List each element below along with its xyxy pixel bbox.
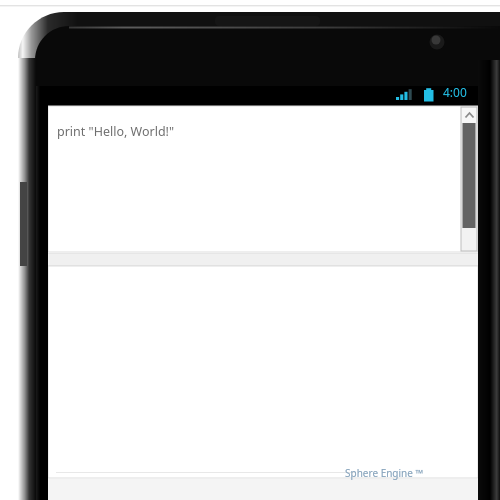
staticText: print "Hello, World!"	[57, 123, 175, 140]
button[interactable]: Scroll up	[462, 107, 477, 123]
button[interactable]: Sphere Engine ™	[345, 466, 475, 482]
staticText: Sphere Engine ™	[345, 466, 424, 480]
staticText: 4:00	[443, 84, 467, 100]
button[interactable]: print "Hello, World!"	[57, 123, 257, 143]
